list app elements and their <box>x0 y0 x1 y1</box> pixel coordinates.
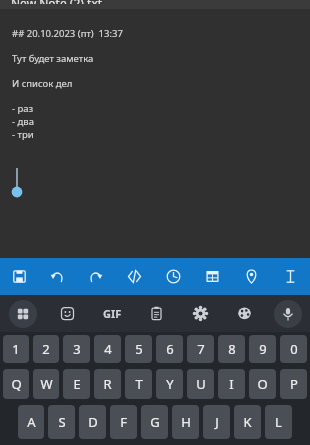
staticText: L <box>275 413 282 431</box>
button[interactable]: Clipboard <box>134 295 178 332</box>
button[interactable]: Stickers <box>45 295 90 332</box>
button[interactable]: 1 <box>3 335 29 363</box>
staticText: 9 <box>259 340 267 358</box>
staticText: GIF <box>103 306 122 321</box>
staticText: 3 <box>73 340 81 358</box>
button[interactable]: P <box>280 369 307 399</box>
staticText: O <box>257 375 268 393</box>
button[interactable]: Location <box>232 258 271 295</box>
staticText: G <box>150 413 160 431</box>
button[interactable]: Settings <box>178 295 222 332</box>
button[interactable]: O <box>249 369 276 399</box>
staticText: Тут будет заметка <box>12 52 94 65</box>
button[interactable]: 5 <box>125 335 152 363</box>
staticText: T <box>135 375 143 393</box>
staticText: New Note (2).txt <box>11 0 103 4</box>
button[interactable]: 2 <box>33 335 59 363</box>
button[interactable]: E <box>63 369 90 399</box>
staticText: 2 <box>42 340 50 358</box>
staticText: 7 <box>197 340 205 358</box>
button[interactable]: Voice input <box>266 295 310 332</box>
staticText: D <box>88 413 98 431</box>
button[interactable]: T <box>125 369 152 399</box>
button[interactable]: Redo <box>76 258 115 295</box>
button[interactable]: H <box>172 405 199 439</box>
button[interactable]: 0 <box>280 335 307 363</box>
staticText: - раз <box>12 102 34 115</box>
button[interactable]: Save <box>0 258 38 295</box>
button[interactable]: 3 <box>63 335 90 363</box>
staticText: 8 <box>228 340 236 358</box>
button[interactable]: D <box>79 405 106 439</box>
staticText: - два <box>12 115 34 128</box>
button[interactable]: W <box>33 369 59 399</box>
staticText: 0 <box>290 340 298 358</box>
button[interactable]: GIF <box>90 295 134 332</box>
staticText: Q <box>11 375 22 393</box>
staticText: - три <box>12 128 34 141</box>
staticText: I <box>229 375 234 393</box>
staticText: J <box>215 413 219 431</box>
staticText: ## 20.10.2023 (пт) 13:37 <box>12 27 123 40</box>
staticText: 1 <box>12 340 20 358</box>
button[interactable]: 7 <box>187 335 214 363</box>
button[interactable]: 4 <box>94 335 121 363</box>
staticText: W <box>40 375 53 393</box>
button[interactable]: 8 <box>218 335 245 363</box>
button[interactable]: New Note (2).txt <box>0 0 310 9</box>
button[interactable]: I <box>218 369 245 399</box>
staticText: S <box>58 413 66 431</box>
button[interactable]: F <box>110 405 137 439</box>
staticText: E <box>73 375 81 393</box>
button[interactable]: 6 <box>156 335 183 363</box>
staticText: F <box>120 413 127 431</box>
button[interactable]: Insert time <box>154 258 193 295</box>
button[interactable]: S <box>48 405 75 439</box>
staticText: Y <box>166 375 174 393</box>
staticText: U <box>196 375 206 393</box>
staticText: K <box>243 413 252 431</box>
button[interactable]: Apps <box>0 295 45 332</box>
staticText: 5 <box>135 340 143 358</box>
button[interactable]: Undo <box>38 258 76 295</box>
button[interactable]: U <box>187 369 214 399</box>
staticText: И список дел <box>12 77 73 90</box>
button[interactable]: Y <box>156 369 183 399</box>
staticText: 6 <box>166 340 174 358</box>
button[interactable]: J <box>203 405 230 439</box>
staticText: P <box>290 375 298 393</box>
button[interactable]: L <box>265 405 292 439</box>
staticText: 4 <box>104 340 112 358</box>
staticText: R <box>103 375 112 393</box>
staticText: A <box>27 413 36 431</box>
button[interactable]: Q <box>3 369 29 399</box>
button[interactable]: G <box>141 405 168 439</box>
button[interactable]: Table <box>193 258 232 295</box>
button[interactable]: 9 <box>249 335 276 363</box>
button[interactable]: R <box>94 369 121 399</box>
staticText: H <box>181 413 191 431</box>
button[interactable]: A <box>18 405 44 439</box>
button[interactable]: Themes <box>222 295 266 332</box>
button[interactable]: Select text <box>271 258 310 295</box>
button[interactable]: Code <box>115 258 154 295</box>
button[interactable]: K <box>234 405 261 439</box>
